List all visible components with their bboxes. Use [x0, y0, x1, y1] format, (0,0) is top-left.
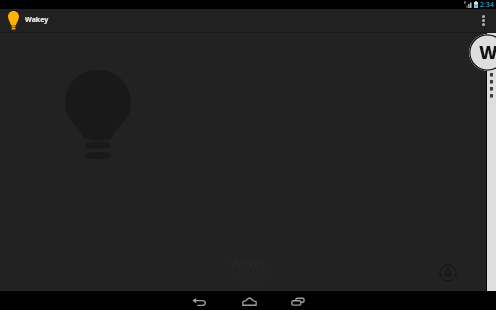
- button[interactable]: Recent apps: [277, 291, 319, 310]
- staticText: W: [479, 40, 496, 65]
- button[interactable]: More options: [470, 9, 496, 33]
- button[interactable]: Back: [178, 291, 220, 310]
- button[interactable]: Home: [228, 291, 270, 310]
- staticText: 2:34: [480, 0, 494, 9]
- button[interactable]: Wakey widget: [469, 34, 496, 71]
- staticText: Wakey: [25, 15, 49, 25]
